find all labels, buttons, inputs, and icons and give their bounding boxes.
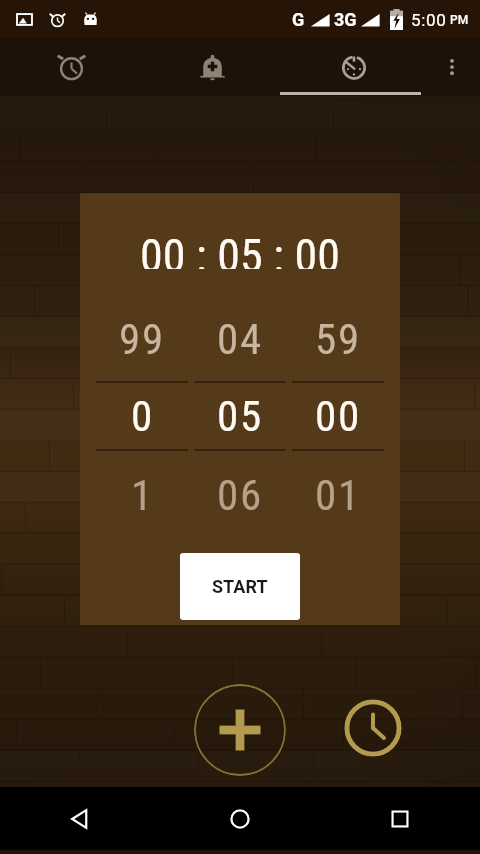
staticText: 04 (217, 314, 263, 364)
button[interactable]: 59 (289, 297, 387, 538)
button[interactable]: Add alarm (142, 38, 283, 96)
staticText: G (292, 9, 305, 30)
staticText: 05 (217, 391, 263, 441)
staticText: 06 (217, 470, 263, 520)
staticText: 1 (131, 470, 154, 520)
button[interactable]: Home (160, 787, 320, 850)
staticText: 99 (119, 314, 165, 364)
staticText: 59 (315, 314, 361, 364)
staticText: 5:00 (411, 10, 447, 30)
button[interactable]: Back (0, 787, 160, 850)
button[interactable]: Add timer (194, 684, 286, 776)
staticText: 01 (315, 470, 361, 520)
staticText: 3G (334, 9, 357, 30)
button[interactable]: Recents (320, 787, 480, 850)
button[interactable]: Timer (283, 38, 424, 96)
button[interactable]: 99 (93, 297, 191, 538)
staticText: 00 : 05 : 00 (140, 229, 340, 269)
staticText: 0 (131, 391, 154, 441)
staticText: PM (450, 13, 469, 27)
button[interactable]: Timer history (344, 699, 402, 757)
button[interactable]: Alarm (0, 38, 142, 96)
button[interactable]: START (180, 553, 300, 620)
button[interactable]: 04 (191, 297, 289, 538)
button[interactable]: More options (424, 38, 480, 96)
staticText: 00 (315, 391, 361, 441)
staticText: START (212, 576, 268, 597)
